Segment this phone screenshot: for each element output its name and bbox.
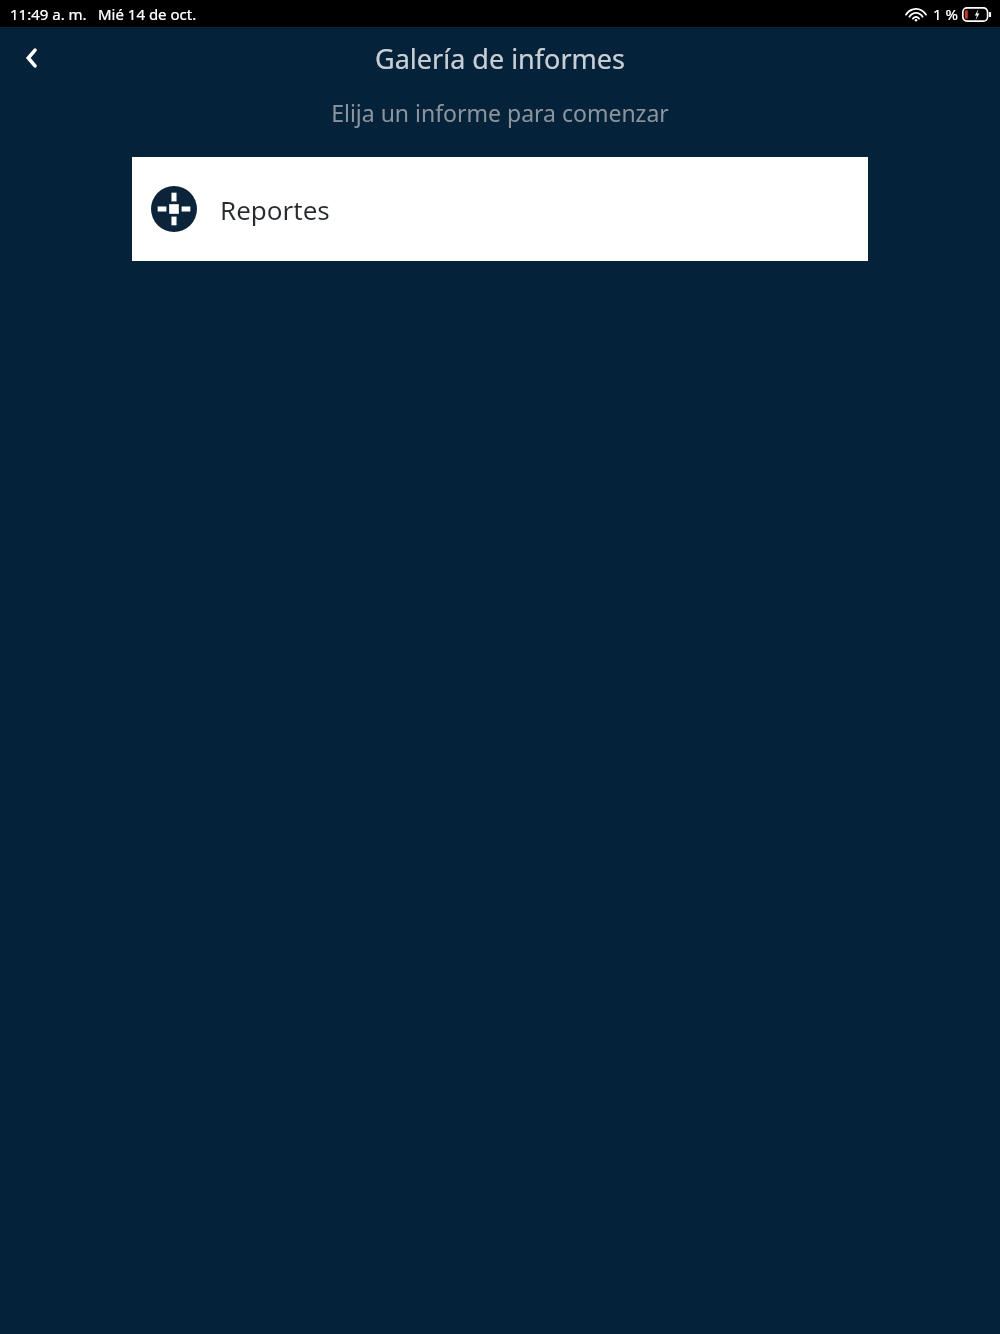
staticText: 11:49 a. m. [10,4,87,24]
staticText: 1 % [933,4,958,24]
staticText: Reportes [220,192,330,227]
staticText: Elija un informe para comenzar [331,97,669,128]
staticText: Mié 14 de oct. [98,4,197,24]
button[interactable]: Reportes [132,157,868,261]
button[interactable]: Atrás [8,33,58,83]
staticText: Galería de informes [375,40,625,77]
